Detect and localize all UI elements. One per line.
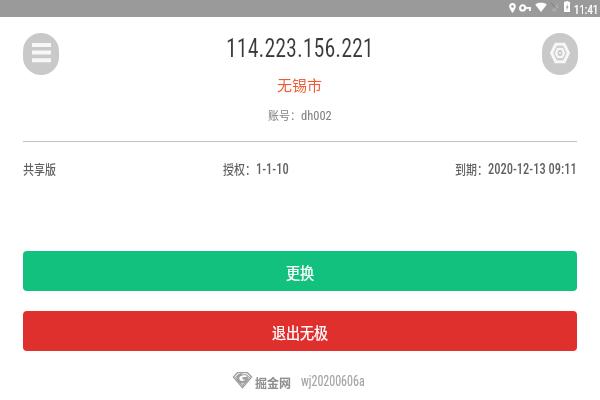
- staticText: 掘金网: [255, 374, 292, 391]
- staticText: 到期：2020-12-13 09:11: [455, 159, 577, 178]
- staticText: 授权：1-1-10: [223, 159, 289, 178]
- staticText: 共享版: [23, 159, 56, 178]
- staticText: 114.223.156.221: [226, 33, 374, 64]
- button[interactable]: 更换: [23, 251, 577, 291]
- staticText: 账号：dh002: [268, 107, 332, 123]
- button[interactable]: 退出无极: [23, 311, 577, 351]
- staticText: 无锡市: [277, 74, 323, 96]
- button[interactable]: Settings: [542, 33, 578, 75]
- staticText: 11:41: [574, 2, 599, 17]
- button[interactable]: Menu: [23, 33, 59, 75]
- staticText: 更换: [286, 261, 314, 283]
- staticText: wj20200606a: [301, 373, 365, 389]
- staticText: 退出无极: [272, 321, 328, 343]
